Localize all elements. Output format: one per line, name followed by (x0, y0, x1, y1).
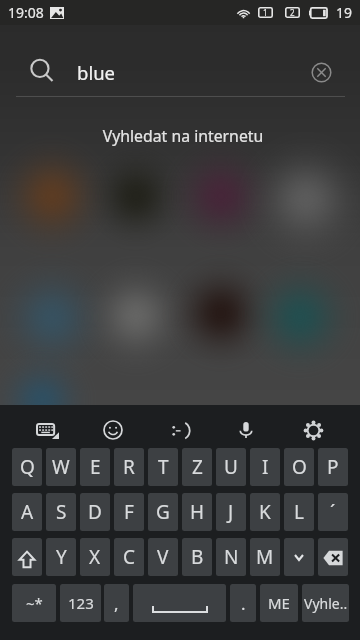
button[interactable]: Keyboard layout (27, 409, 69, 451)
button[interactable]: J (216, 493, 246, 531)
staticText: K (259, 499, 271, 525)
button[interactable]: Emoticons (158, 409, 200, 451)
staticText: P (327, 454, 339, 480)
staticText: J (228, 499, 234, 525)
button[interactable]: O (284, 448, 314, 486)
button[interactable]: Vyhle.. (302, 584, 349, 622)
button[interactable]: ME (260, 584, 298, 622)
button[interactable]: Search (25, 54, 58, 87)
staticText: Vyhle.. (304, 594, 348, 613)
button[interactable]: B (182, 538, 212, 576)
staticText: blue (77, 60, 116, 85)
staticText: 19:08 (8, 3, 44, 22)
staticText: H (190, 499, 205, 525)
button[interactable]: Shift (12, 538, 42, 576)
staticText: . (241, 592, 246, 615)
staticText: Q (20, 454, 35, 480)
staticText: N (224, 544, 239, 570)
button[interactable]: G (148, 493, 178, 531)
button[interactable]: F (114, 493, 144, 531)
button[interactable]: Z (182, 448, 212, 486)
staticText: T (158, 454, 169, 480)
staticText: R (123, 454, 135, 480)
staticText: 19 (336, 3, 353, 22)
staticText: 123 (68, 593, 94, 613)
button[interactable]: M (250, 538, 280, 576)
button[interactable]: 123 (60, 584, 101, 622)
staticText: ´ (330, 499, 336, 525)
button[interactable]: R (114, 448, 144, 486)
staticText: ME (268, 593, 290, 613)
staticText: A (21, 499, 34, 525)
staticText: O (292, 454, 307, 480)
staticText: C (123, 544, 136, 570)
button[interactable]: I (250, 448, 280, 486)
staticText: W (52, 454, 70, 480)
button[interactable]: ´ (318, 493, 348, 531)
button[interactable]: A (12, 493, 42, 531)
staticText: I (262, 454, 269, 480)
button[interactable]: X (80, 538, 110, 576)
button[interactable]: K (250, 493, 280, 531)
button[interactable]: ~* (12, 584, 56, 622)
button[interactable]: W (46, 448, 76, 486)
button[interactable]: Clear (305, 56, 338, 89)
button[interactable]: Emoji (92, 409, 134, 451)
staticText: E (90, 454, 101, 480)
staticText: M (256, 544, 274, 570)
button[interactable]: L (284, 493, 314, 531)
staticText: S (56, 499, 67, 525)
staticText: Z (192, 454, 203, 480)
button[interactable]: . (230, 584, 256, 622)
button[interactable]: U (216, 448, 246, 486)
button[interactable]: Settings (292, 409, 334, 451)
button[interactable]: V (148, 538, 178, 576)
button[interactable]: Space (133, 584, 226, 622)
button[interactable]: C (114, 538, 144, 576)
staticText: X (89, 544, 101, 570)
staticText: Vyhledat na internetu (3, 125, 360, 147)
staticText: G (156, 499, 170, 525)
staticText: Y (56, 544, 67, 570)
staticText: B (191, 544, 204, 570)
button[interactable]: Y (46, 538, 76, 576)
button[interactable]: H (182, 493, 212, 531)
staticText: D (88, 499, 102, 525)
staticText: F (124, 499, 134, 525)
staticText: , (114, 592, 119, 615)
button[interactable]: Voice input (225, 409, 267, 451)
button[interactable]: E (80, 448, 110, 486)
staticText: U (224, 454, 238, 480)
button[interactable]: , (104, 584, 129, 622)
staticText: 2 (290, 7, 295, 18)
staticText: 1 (263, 7, 268, 18)
button[interactable]: D (80, 493, 110, 531)
button[interactable]: S (46, 493, 76, 531)
button[interactable]: Backspace (318, 538, 348, 576)
staticText: L (294, 499, 304, 525)
staticText: V (157, 544, 169, 570)
button[interactable]: T (148, 448, 178, 486)
button[interactable]: Q (12, 448, 42, 486)
staticText: ~* (26, 593, 43, 613)
button[interactable]: N (216, 538, 246, 576)
button[interactable]: More symbols (284, 538, 314, 576)
button[interactable]: P (318, 448, 348, 486)
